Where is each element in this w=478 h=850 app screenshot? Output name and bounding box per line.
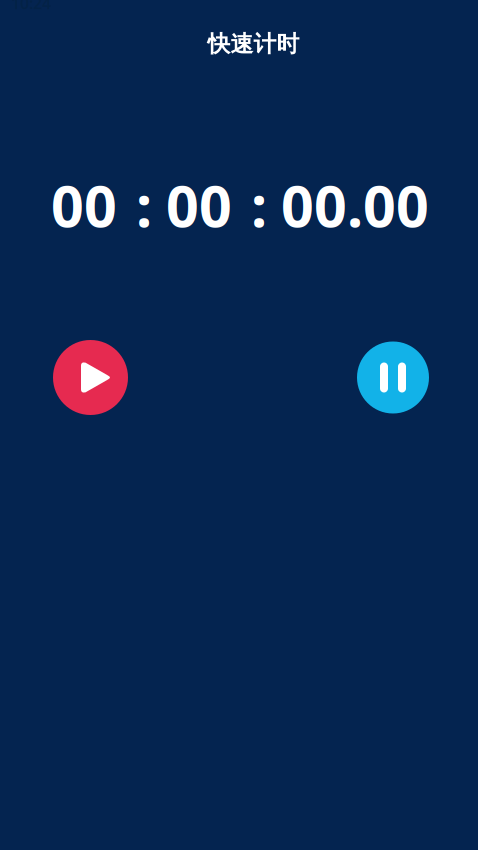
button[interactable]: Start timer: [53, 340, 128, 415]
staticText: 00: [51, 167, 117, 243]
staticText: :: [251, 167, 267, 243]
staticText: 00: [166, 167, 232, 243]
staticText: :: [136, 167, 152, 243]
button[interactable]: Pause timer: [357, 341, 429, 413]
staticText: 快速计时: [207, 30, 299, 58]
staticText: 10:24: [11, 0, 51, 14]
staticText: 00.00: [281, 167, 429, 243]
